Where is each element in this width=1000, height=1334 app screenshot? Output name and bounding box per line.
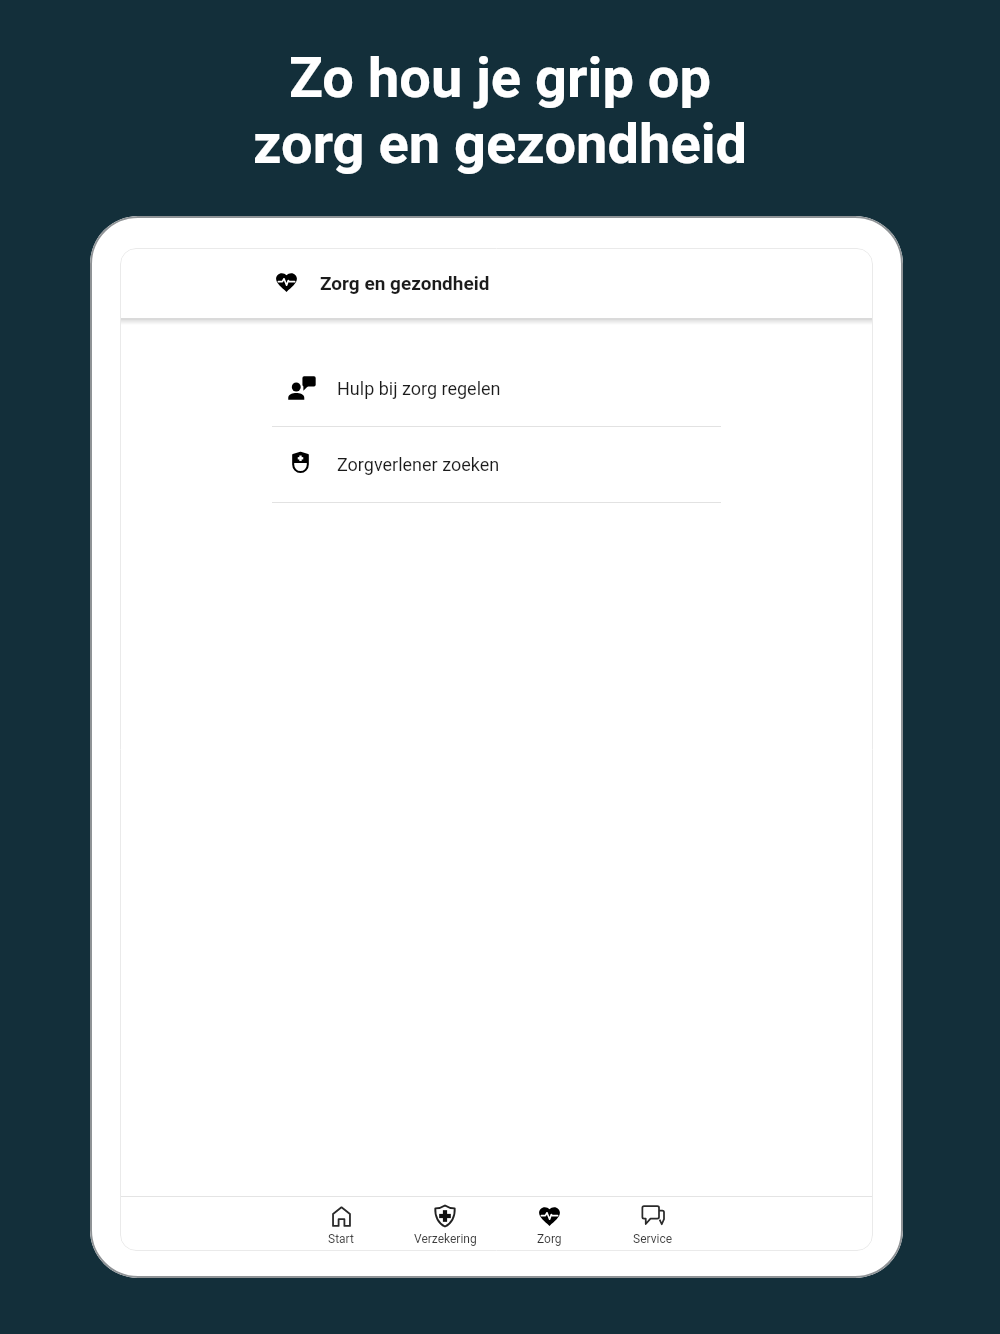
staticText: Verzekering bbox=[414, 1232, 477, 1246]
staticText: Zorgverlener zoeken bbox=[337, 454, 500, 475]
staticText: Service bbox=[633, 1232, 673, 1246]
button[interactable]: Zorgverlener zoeken bbox=[272, 426, 721, 502]
button[interactable]: Service bbox=[601, 1201, 705, 1246]
staticText: Hulp bij zorg regelen bbox=[337, 378, 501, 399]
button[interactable]: Hulp bij zorg regelen bbox=[272, 350, 721, 426]
button[interactable]: Zorg en gezondheid bbox=[120, 248, 873, 318]
button[interactable]: Zorg bbox=[497, 1201, 601, 1246]
button[interactable]: Verzekering bbox=[393, 1201, 497, 1246]
staticText: Zorg bbox=[537, 1232, 562, 1246]
button[interactable]: Start bbox=[289, 1201, 393, 1246]
staticText: Zo hou je grip op zorg en gezondheid bbox=[0, 45, 1000, 177]
staticText: Start bbox=[328, 1232, 354, 1246]
staticText: Zorg en gezondheid bbox=[320, 272, 490, 294]
